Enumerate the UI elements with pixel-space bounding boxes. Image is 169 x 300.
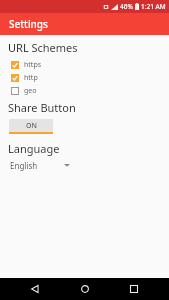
button[interactable]: https (6, 58, 169, 71)
button[interactable]: Recent apps (119, 278, 149, 300)
button[interactable]: English (10, 158, 72, 172)
staticText: English (10, 160, 38, 171)
staticText: ON (26, 121, 37, 131)
staticText: Settings (9, 17, 48, 31)
staticText: https (24, 60, 42, 70)
button[interactable]: http (6, 71, 169, 84)
staticText: URL Schemes (8, 40, 78, 55)
staticText: 1:21 AM (141, 2, 166, 11)
button[interactable]: geo (6, 84, 169, 97)
button[interactable]: Back (20, 278, 50, 300)
other: Open language dropdown (64, 163, 70, 167)
staticText: Language (8, 141, 60, 156)
staticText: geo (24, 86, 37, 96)
staticText: 46% (120, 2, 133, 11)
staticText: http (24, 73, 38, 83)
button[interactable]: Home (70, 278, 100, 300)
staticText: Share Button (8, 100, 76, 115)
button[interactable]: ON (9, 119, 53, 134)
